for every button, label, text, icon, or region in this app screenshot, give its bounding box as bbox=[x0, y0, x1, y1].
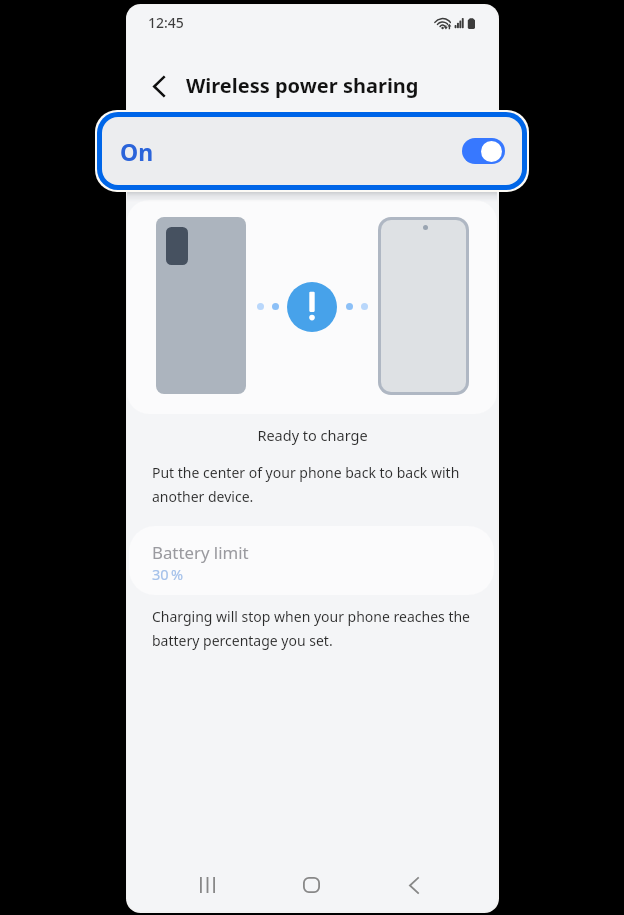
staticText: Charging will stop when your phone reach… bbox=[152, 607, 482, 650]
button[interactable]: On bbox=[102, 117, 522, 185]
button[interactable]: Navigate up bbox=[136, 63, 182, 109]
staticText: Battery limit bbox=[152, 541, 249, 564]
staticText: On bbox=[120, 136, 154, 167]
button[interactable]: Battery limit bbox=[129, 526, 494, 595]
button[interactable]: Home bbox=[281, 862, 341, 908]
button[interactable]: Back bbox=[384, 862, 444, 908]
staticText: Put the center of your phone back to bac… bbox=[152, 463, 472, 506]
staticText: 30 % bbox=[152, 564, 184, 584]
button[interactable]: Wireless power sharing on bbox=[462, 138, 505, 164]
staticText: Wireless power sharing bbox=[186, 72, 419, 99]
staticText: 12:45 bbox=[148, 13, 184, 32]
button[interactable]: Recent apps bbox=[177, 862, 237, 908]
staticText: Ready to charge bbox=[257, 425, 368, 445]
